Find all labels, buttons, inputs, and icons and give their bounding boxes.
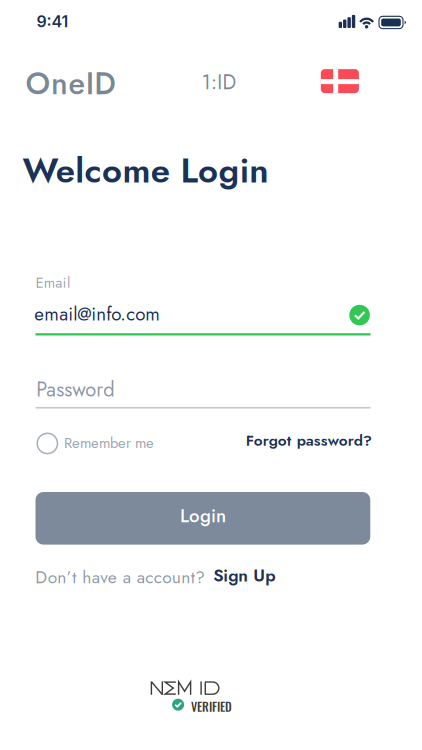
staticText: Forgot password?	[246, 429, 372, 451]
staticText: VERIFIED	[191, 697, 232, 715]
staticText: 1:ID	[202, 68, 237, 97]
button[interactable]: Forgot password?	[246, 429, 372, 451]
staticText: Sign Up	[213, 563, 275, 588]
staticText: Login	[180, 502, 226, 529]
staticText: Password	[36, 375, 114, 404]
staticText: Don’t have a account?	[35, 565, 205, 590]
staticText: 9:41	[36, 12, 68, 31]
button[interactable]: Change language	[321, 69, 359, 93]
staticText: Remember me	[64, 432, 154, 454]
staticText: Welcome Login	[22, 145, 268, 196]
staticText: email@info.com	[34, 300, 160, 327]
button[interactable]: Login	[35, 492, 370, 545]
button[interactable]: Remember me	[37, 433, 127, 454]
staticText: OneID	[26, 61, 115, 106]
staticText: Email	[35, 272, 70, 293]
button[interactable]: Sign Up	[213, 563, 275, 588]
